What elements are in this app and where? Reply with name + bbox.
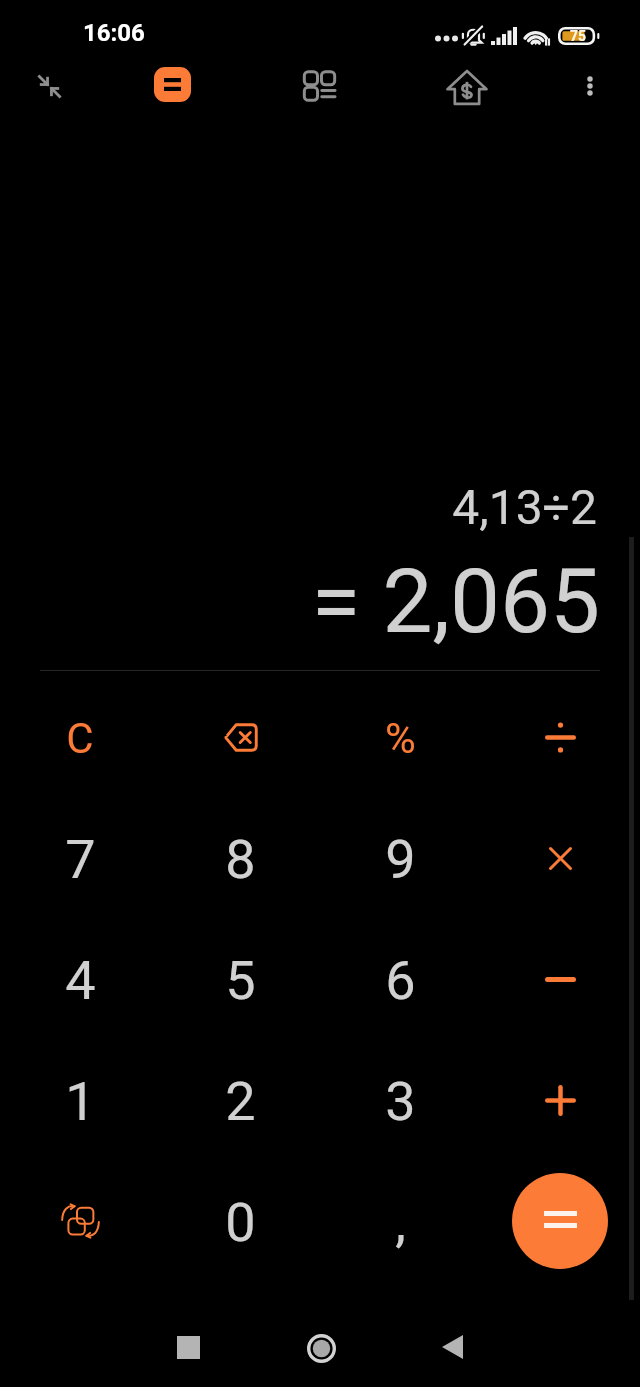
button[interactable]: More options: [554, 50, 626, 122]
button[interactable]: Unit converter: [0, 1161, 160, 1281]
staticText: 3: [385, 1070, 416, 1133]
staticText: %: [385, 714, 416, 763]
staticText: 2: [225, 1070, 256, 1133]
button[interactable]: 8: [160, 799, 320, 919]
button[interactable]: Mortgage calculator: [431, 51, 503, 123]
button[interactable]: Layouts: [283, 49, 355, 121]
staticText: 16:06: [83, 19, 145, 47]
staticText: 8: [225, 828, 256, 891]
button[interactable]: 2: [160, 1041, 320, 1161]
staticText: = 2,065: [0, 549, 600, 653]
staticText: 4,13÷2: [0, 479, 597, 535]
staticText: 1: [65, 1070, 96, 1133]
staticText: 0: [225, 1191, 256, 1254]
button[interactable]: 4: [0, 920, 160, 1040]
staticText: C: [66, 714, 94, 763]
staticText: 4: [65, 949, 96, 1012]
button[interactable]: Divide: [480, 677, 640, 797]
button[interactable]: C: [0, 678, 160, 798]
staticText: 5: [225, 949, 256, 1012]
button[interactable]: Back: [416, 1311, 488, 1383]
button[interactable]: Minus: [480, 919, 640, 1039]
button[interactable]: Calculator: [136, 48, 208, 120]
staticText: ,: [395, 1191, 406, 1254]
button[interactable]: 5: [160, 920, 320, 1040]
button[interactable]: %: [320, 678, 480, 798]
button[interactable]: ,: [320, 1162, 480, 1282]
button[interactable]: Recent apps: [152, 1311, 224, 1383]
button[interactable]: Plus: [480, 1040, 640, 1160]
button[interactable]: 0: [160, 1162, 320, 1282]
staticText: 75: [570, 28, 587, 44]
button[interactable]: 3: [320, 1041, 480, 1161]
button[interactable]: Home: [285, 1312, 357, 1384]
button[interactable]: 7: [0, 799, 160, 919]
button[interactable]: 9: [320, 799, 480, 919]
staticText: 7: [65, 828, 96, 891]
staticText: 9: [385, 828, 416, 891]
button[interactable]: Equals: [512, 1173, 608, 1269]
button[interactable]: 6: [320, 920, 480, 1040]
button[interactable]: Backspace: [160, 677, 320, 797]
button[interactable]: Collapse: [13, 50, 85, 122]
button[interactable]: 1: [0, 1041, 160, 1161]
button[interactable]: Multiply: [480, 798, 640, 918]
staticText: 6: [385, 949, 416, 1012]
